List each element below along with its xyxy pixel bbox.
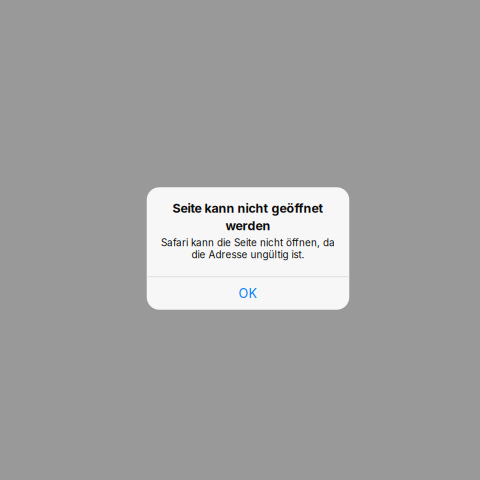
staticText: Seite kann nicht geöffnet	[172, 201, 323, 216]
button[interactable]: OK	[147, 277, 349, 310]
staticText: Safari kann die Seite nicht öffnen, da	[161, 237, 335, 249]
staticText: OK	[238, 286, 257, 301]
staticText: die Adresse ungültig ist.	[191, 249, 304, 261]
staticText: werden	[225, 218, 270, 233]
